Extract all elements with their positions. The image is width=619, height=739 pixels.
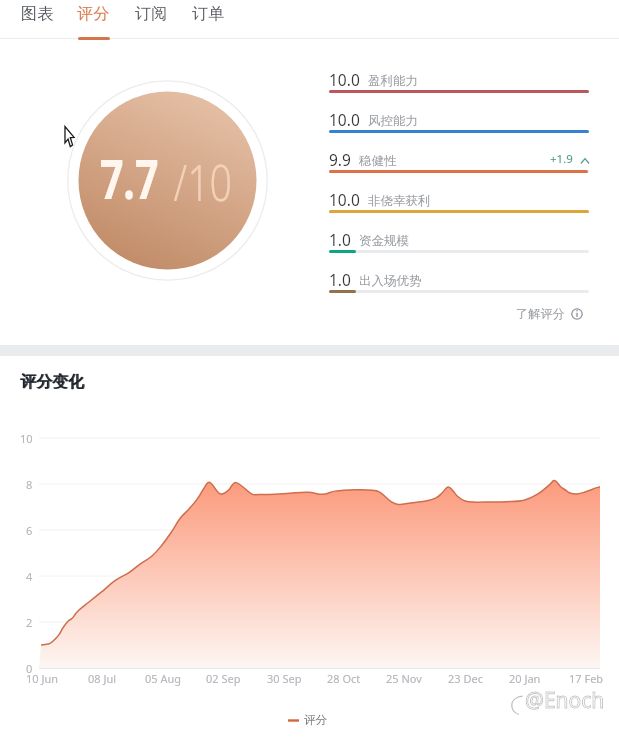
button[interactable]: Score 7.7 of 10 (67, 80, 268, 281)
staticText: 10 (20, 431, 33, 446)
staticText: 7.7 (100, 141, 159, 215)
staticText: 了解评分 (516, 306, 565, 321)
staticText: 02 Sep (206, 671, 241, 686)
staticText: 4 (26, 569, 33, 584)
staticText: 非侥幸获利 (368, 193, 431, 209)
button[interactable]: 1.0 (329, 223, 589, 263)
staticText: 6 (26, 523, 33, 538)
staticText: @Enoch (525, 686, 605, 715)
staticText: 10.0 (329, 189, 360, 210)
staticText: 1.0 (329, 269, 351, 290)
staticText: 评分变化 (21, 372, 85, 392)
staticText: 2 (26, 615, 33, 630)
staticText: 评分 (304, 713, 327, 727)
staticText: 稳健性 (359, 153, 397, 169)
other: Learn about score (571, 308, 583, 320)
staticText: +1.9 (550, 151, 573, 167)
button[interactable]: 订阅 (127, 0, 175, 41)
button[interactable]: 评分 (288, 713, 327, 727)
staticText: 订单 (192, 3, 225, 23)
button[interactable]: 9.9 (329, 143, 589, 183)
button[interactable]: 10.0 (329, 103, 589, 143)
staticText: 资金规模 (359, 233, 409, 249)
staticText: 出入场优势 (359, 273, 422, 289)
staticText: 订阅 (135, 3, 168, 23)
button[interactable]: 图表 (13, 0, 61, 41)
staticText: 20 Jan (509, 671, 541, 686)
staticText: 盈利能力 (368, 73, 418, 89)
button[interactable]: 订单 (184, 0, 232, 41)
staticText: 8 (26, 477, 33, 492)
staticText: /10 (173, 149, 232, 215)
staticText: 1.0 (329, 229, 351, 250)
button[interactable]: 10.0 (329, 183, 589, 223)
staticText: 30 Sep (267, 671, 302, 686)
staticText: 23 Dec (448, 671, 483, 686)
staticText: 08 Jul (88, 671, 117, 686)
button[interactable]: 1.0 (329, 263, 589, 303)
staticText: 9.9 (329, 149, 351, 170)
staticText: 评分变化 (20, 372, 84, 392)
staticText: 10.0 (329, 69, 360, 90)
staticText: 风控能力 (368, 113, 418, 129)
staticText: 10.0 (329, 109, 360, 130)
staticText: 0 (26, 661, 33, 676)
staticText: 25 Nov (386, 671, 422, 686)
staticText: 10 Jun (26, 671, 59, 686)
button[interactable]: 评分 (69, 0, 117, 41)
staticText: 05 Aug (145, 671, 182, 686)
button[interactable]: 了解评分 (516, 306, 583, 321)
staticText: 评分 (77, 3, 110, 23)
button[interactable]: 10.0 (329, 63, 589, 103)
staticText: 17 Feb (569, 671, 604, 686)
staticText: 图表 (21, 3, 54, 23)
staticText: 28 Oct (327, 671, 361, 686)
